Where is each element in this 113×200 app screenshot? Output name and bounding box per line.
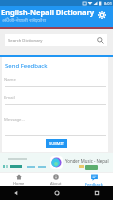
staticText: Name — [4, 77, 16, 83]
staticText: SUBMIT — [49, 141, 65, 146]
button[interactable]: Settings — [96, 9, 107, 20]
staticText: Search Dictionary — [8, 38, 43, 44]
button[interactable]: SUBMIT — [46, 139, 67, 148]
staticText: Yonder Music - Nepal — [65, 158, 109, 164]
staticText: Send Feedback — [5, 62, 48, 70]
staticText: 8:01 — [104, 1, 112, 6]
other: Home — [53, 189, 61, 197]
staticText: English-Nepali Dictionary — [1, 7, 95, 17]
other: Recents — [93, 189, 101, 197]
staticText: Feedback — [85, 182, 103, 186]
staticText: अंग्रेजी-नेपाली शब्दकोश — [2, 16, 46, 23]
button[interactable]: About — [37, 173, 75, 186]
other: Search — [96, 36, 104, 44]
staticText: Message... — [4, 117, 25, 123]
button[interactable]: Feedback — [75, 173, 113, 186]
button[interactable]: Home — [0, 173, 37, 186]
staticText: Home — [13, 181, 25, 186]
other: Back — [12, 189, 20, 197]
staticText: About — [50, 181, 62, 186]
button[interactable]: Search Dictionary — [5, 34, 107, 46]
staticText: Email — [4, 95, 15, 101]
